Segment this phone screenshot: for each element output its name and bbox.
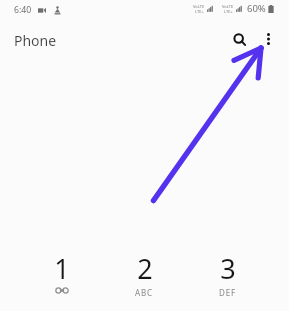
staticText: VoLTE: [222, 4, 234, 9]
button[interactable]: More options: [254, 25, 282, 53]
button[interactable]: Search: [223, 23, 257, 57]
staticText: DEF: [219, 287, 237, 298]
staticText: VoLTE: [193, 4, 205, 9]
button[interactable]: 3: [186, 250, 269, 298]
staticText: 3: [220, 250, 236, 287]
button[interactable]: 2: [103, 250, 186, 298]
staticText: ABC: [135, 287, 154, 298]
staticText: Phone: [14, 31, 57, 50]
staticText: 6:40: [14, 4, 32, 16]
other: Voicemail: [55, 287, 69, 294]
staticText: LTE+: [195, 9, 204, 14]
staticText: 1: [54, 250, 70, 287]
staticText: LTE+: [224, 9, 233, 14]
staticText: 60%: [247, 2, 266, 15]
staticText: 2: [137, 250, 153, 287]
button[interactable]: 1: [20, 250, 103, 294]
